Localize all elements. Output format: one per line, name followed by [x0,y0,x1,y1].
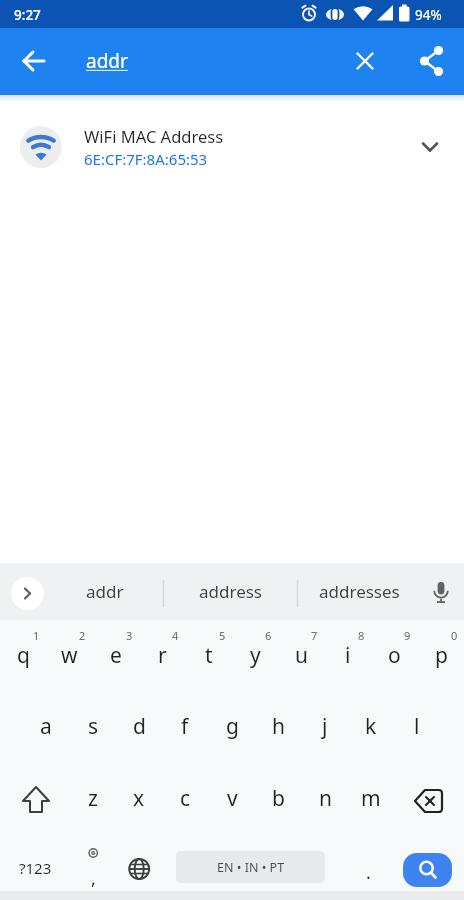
button[interactable] [394,763,464,834]
button[interactable]: f [162,691,208,762]
button[interactable]: d [116,691,162,762]
staticText: 6 [265,628,272,643]
button[interactable]: n [302,763,348,834]
staticText: l [414,712,420,741]
button[interactable]: j [302,691,348,762]
staticText: d [133,712,146,741]
staticText: r [158,641,167,670]
staticText: . [366,860,371,885]
staticText: m [361,784,381,813]
staticText: j [322,712,328,741]
button[interactable]: , [70,835,116,900]
staticText: addr [86,48,128,74]
button[interactable]: u [278,620,324,691]
staticText: s [88,712,99,741]
staticText: v [227,784,238,813]
button[interactable] [403,853,452,887]
button[interactable]: . [345,835,391,900]
button[interactable]: EN • IN • PT [176,851,325,883]
button[interactable]: y [232,620,278,691]
staticText: f [181,712,189,741]
button[interactable]: b [255,763,301,834]
button[interactable]: c [162,763,208,834]
button[interactable]: g [209,691,255,762]
staticText: 2 [79,628,86,643]
button[interactable]: address [164,571,297,612]
staticText: 9:27 [14,6,41,24]
button[interactable] [11,577,44,610]
button[interactable]: p [418,620,464,691]
button[interactable]: a [23,691,69,762]
staticText: addr [86,580,124,603]
staticText: a [40,712,52,741]
staticText: z [88,784,98,813]
staticText: x [133,784,145,813]
staticText: u [295,641,308,670]
button[interactable]: WiFi MAC Address [0,103,464,191]
button[interactable]: e [93,620,139,691]
staticText: p [435,641,448,670]
staticText: 1 [33,628,40,643]
staticText: address [199,580,263,603]
button[interactable] [420,571,460,611]
button[interactable]: k [348,691,394,762]
staticText: EN • IN • PT [217,859,285,876]
button[interactable]: o [371,620,417,691]
staticText: 8 [358,628,365,643]
staticText: 0 [451,628,458,643]
staticText: 94% [415,6,442,24]
button[interactable]: addr [47,571,163,612]
button[interactable]: t [186,620,232,691]
staticText: c [180,784,191,813]
staticText: o [388,641,401,670]
staticText: ?123 [19,858,52,878]
staticText: 6E:CF:7F:8A:65:53 [84,149,208,169]
button[interactable] [0,763,70,834]
staticText: 9 [404,628,411,643]
staticText: , [91,866,96,891]
staticText: 4 [172,628,179,643]
staticText: n [319,784,332,813]
button[interactable]: h [255,691,301,762]
button[interactable]: s [70,691,116,762]
button[interactable]: w [46,620,92,691]
button[interactable] [116,835,162,900]
staticText: b [272,784,285,813]
staticText: e [110,641,122,670]
staticText: h [272,712,285,741]
button[interactable]: z [70,763,116,834]
button[interactable]: addr [78,40,338,82]
button[interactable]: i [325,620,371,691]
button[interactable]: v [209,763,255,834]
button[interactable] [10,37,58,85]
button[interactable] [408,37,456,85]
staticText: addresses [319,580,400,603]
button[interactable]: ?123 [0,835,70,900]
button[interactable]: x [116,763,162,834]
staticText: w [61,641,78,670]
staticText: k [365,712,377,741]
staticText: 3 [126,628,133,643]
staticText: WiFi MAC Address [84,125,224,147]
button[interactable]: l [394,691,440,762]
staticText: q [17,641,30,670]
button[interactable]: q [0,620,46,691]
staticText: g [226,712,239,741]
button[interactable]: m [348,763,394,834]
button[interactable]: r [139,620,185,691]
staticText: t [205,641,213,670]
button[interactable]: addresses [298,571,420,612]
staticText: 7 [311,628,318,643]
staticText: i [345,641,351,670]
button[interactable] [341,37,389,85]
staticText: y [250,641,261,670]
staticText: 5 [219,628,226,643]
